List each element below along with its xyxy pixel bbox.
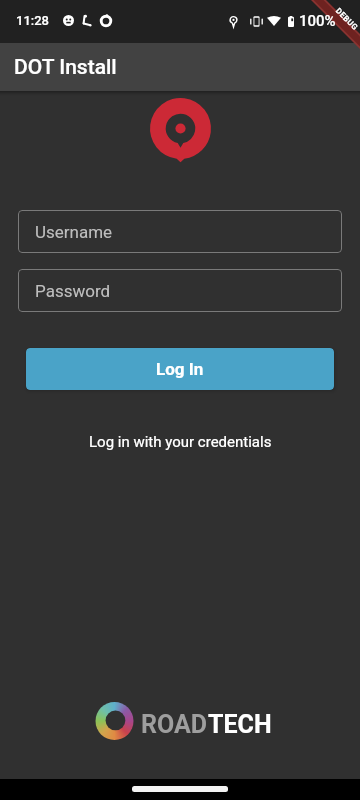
button[interactable]: Log In: [26, 348, 334, 390]
staticText: Log in with your credentials: [89, 433, 272, 451]
button[interactable]: Username: [18, 210, 342, 253]
staticText: Username: [35, 222, 113, 242]
staticText: Log In: [156, 359, 204, 379]
staticText: 100%: [299, 12, 336, 30]
staticText: ROAD: [141, 710, 208, 739]
button[interactable]: Password: [18, 269, 342, 312]
staticText: DOT Install: [14, 55, 117, 80]
staticText: TECH: [208, 710, 272, 739]
staticText: 11:28: [16, 13, 49, 28]
staticText: Password: [35, 281, 111, 301]
staticText: DEBUG: [334, 6, 360, 33]
